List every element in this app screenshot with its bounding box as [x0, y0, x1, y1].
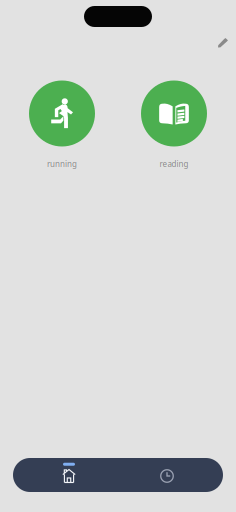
- button[interactable]: Edit: [211, 31, 235, 54]
- button[interactable]: running: [6, 80, 118, 169]
- button[interactable]: Home: [20, 458, 118, 492]
- staticText: running: [47, 158, 77, 169]
- staticText: reading: [159, 158, 188, 169]
- button[interactable]: reading: [118, 80, 230, 169]
- button[interactable]: History: [118, 458, 216, 492]
